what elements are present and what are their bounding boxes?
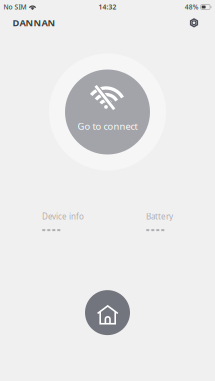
staticText: DANNAN: [12, 16, 55, 29]
staticText: 14:32: [98, 3, 116, 11]
staticText: 48%: [185, 3, 199, 11]
button[interactable]: Settings: [182, 11, 206, 35]
staticText: Device info: [42, 211, 84, 222]
staticText: No SIM: [3, 3, 26, 11]
staticText: Go to connect: [77, 120, 137, 132]
button[interactable]: Go to connect: [49, 53, 166, 170]
button[interactable]: Home: [85, 290, 130, 335]
staticText: Battery: [146, 211, 173, 222]
